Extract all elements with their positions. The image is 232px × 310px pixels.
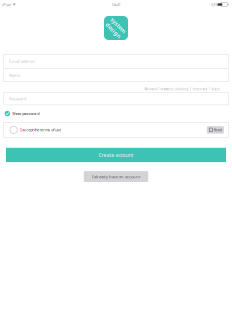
staticText: 14:41 (111, 2, 120, 7)
staticText: design (106, 28, 126, 35)
staticText: I already have an account (92, 174, 140, 179)
button[interactable]: I already have an account (84, 171, 148, 182)
staticText: system (106, 21, 125, 28)
staticText: iPad (2, 2, 11, 7)
staticText: Minimum 7 characters, including 1 letter… (144, 87, 219, 91)
staticText: Password (9, 96, 26, 101)
staticText: Show password (12, 111, 39, 116)
staticText: Read (213, 127, 221, 132)
staticText: I accept the terms of use (20, 127, 61, 132)
button[interactable]: Create account (6, 148, 226, 162)
staticText: Name (9, 72, 20, 78)
button[interactable]: Read (207, 126, 224, 134)
staticText: E-mail address (9, 58, 35, 64)
button[interactable]: Show password (0, 105, 232, 122)
staticText: 61% (211, 2, 219, 7)
staticText: Create account (98, 151, 133, 158)
